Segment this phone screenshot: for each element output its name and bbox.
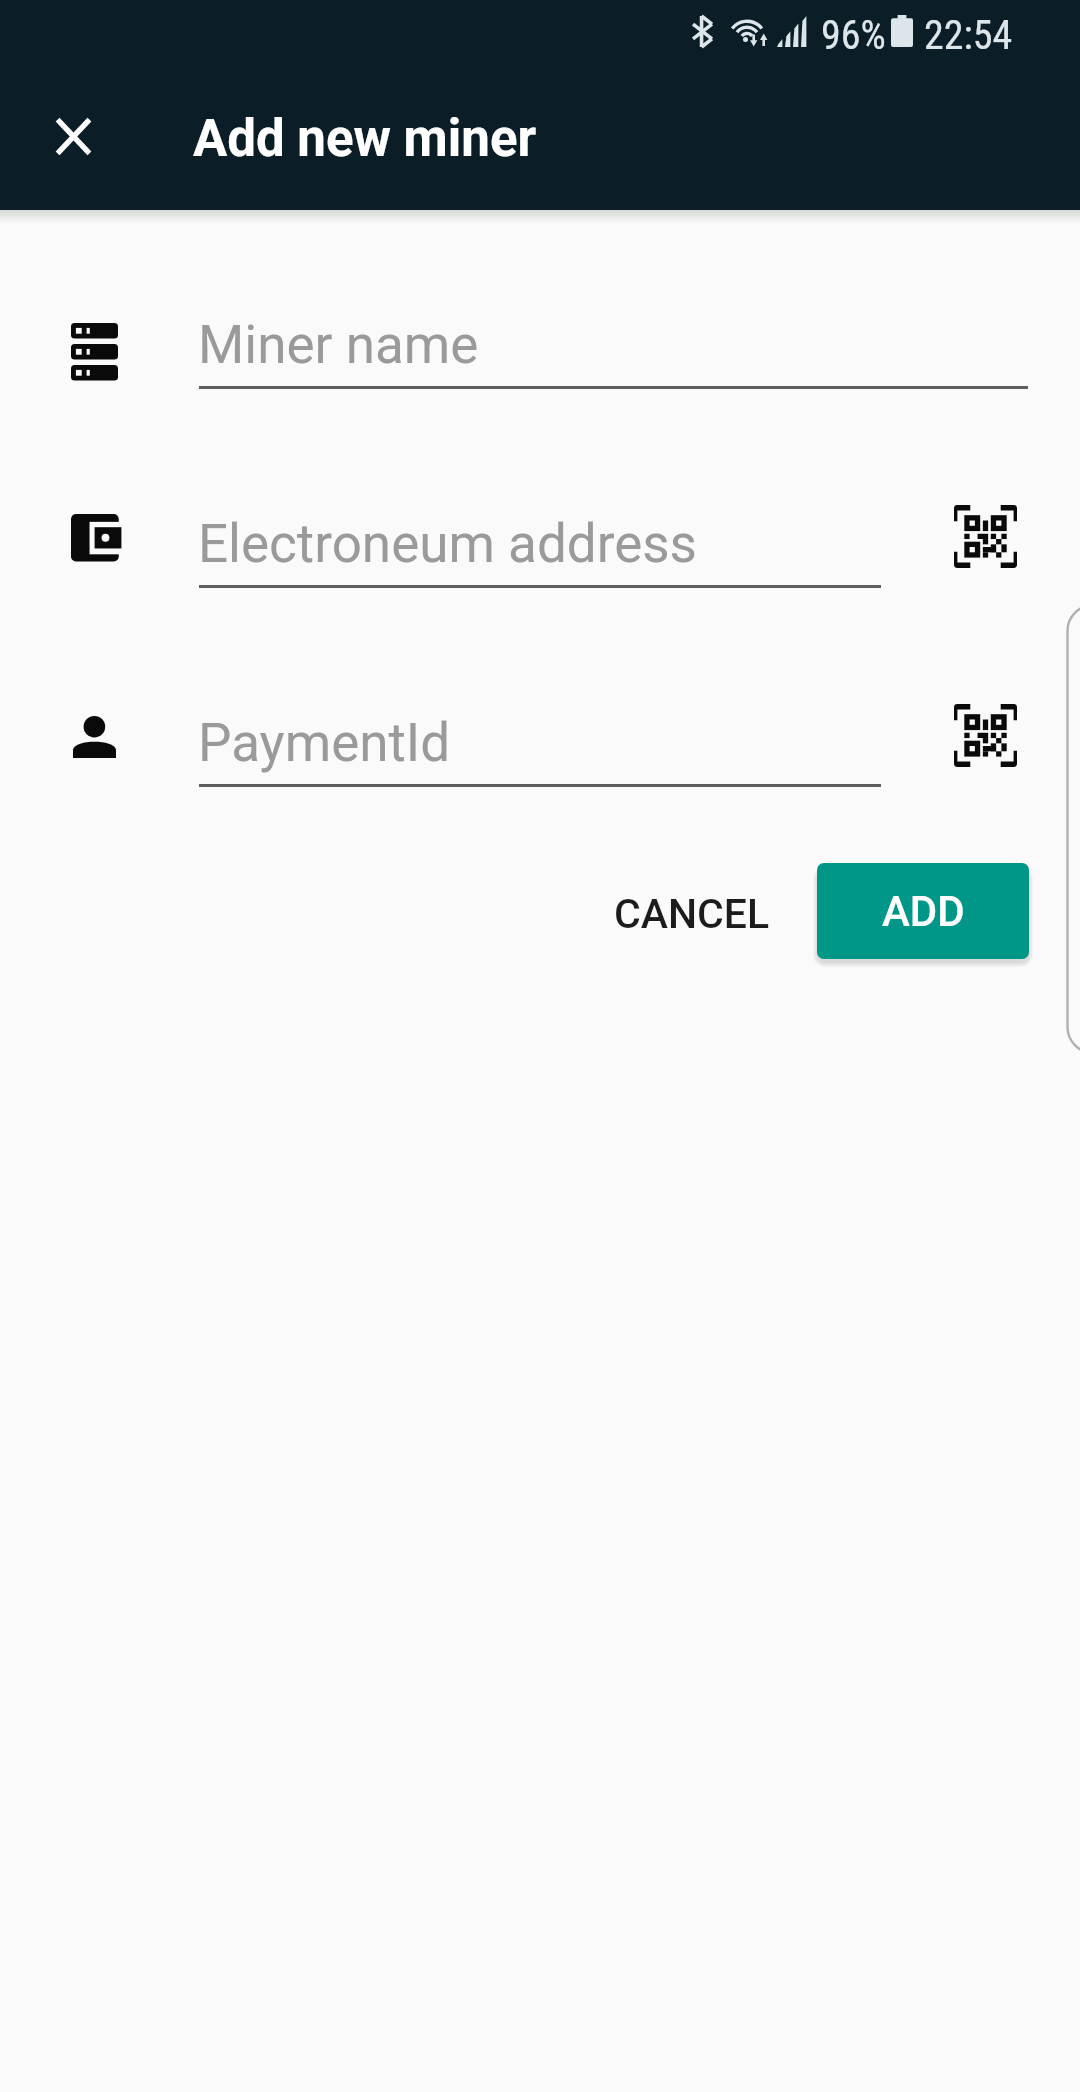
staticText: Electroneum address [198,513,697,575]
staticText: 22:54 [924,12,1013,59]
button[interactable]: PaymentId [199,702,881,787]
button[interactable]: Miner name [199,304,1028,389]
button[interactable]: Scan QR code [926,676,1045,795]
staticText: 96% [821,12,886,59]
staticText: CANCEL [614,890,770,938]
staticText: Add new miner [193,109,537,169]
button[interactable]: Close [29,92,117,180]
button[interactable]: CANCEL [586,866,798,962]
button[interactable]: Electroneum address [199,503,881,588]
button[interactable]: ADD [817,863,1029,959]
button[interactable]: Scan QR code [926,477,1045,596]
staticText: PaymentId [198,712,451,774]
staticText: ADD [882,887,965,936]
staticText: Miner name [198,314,479,376]
